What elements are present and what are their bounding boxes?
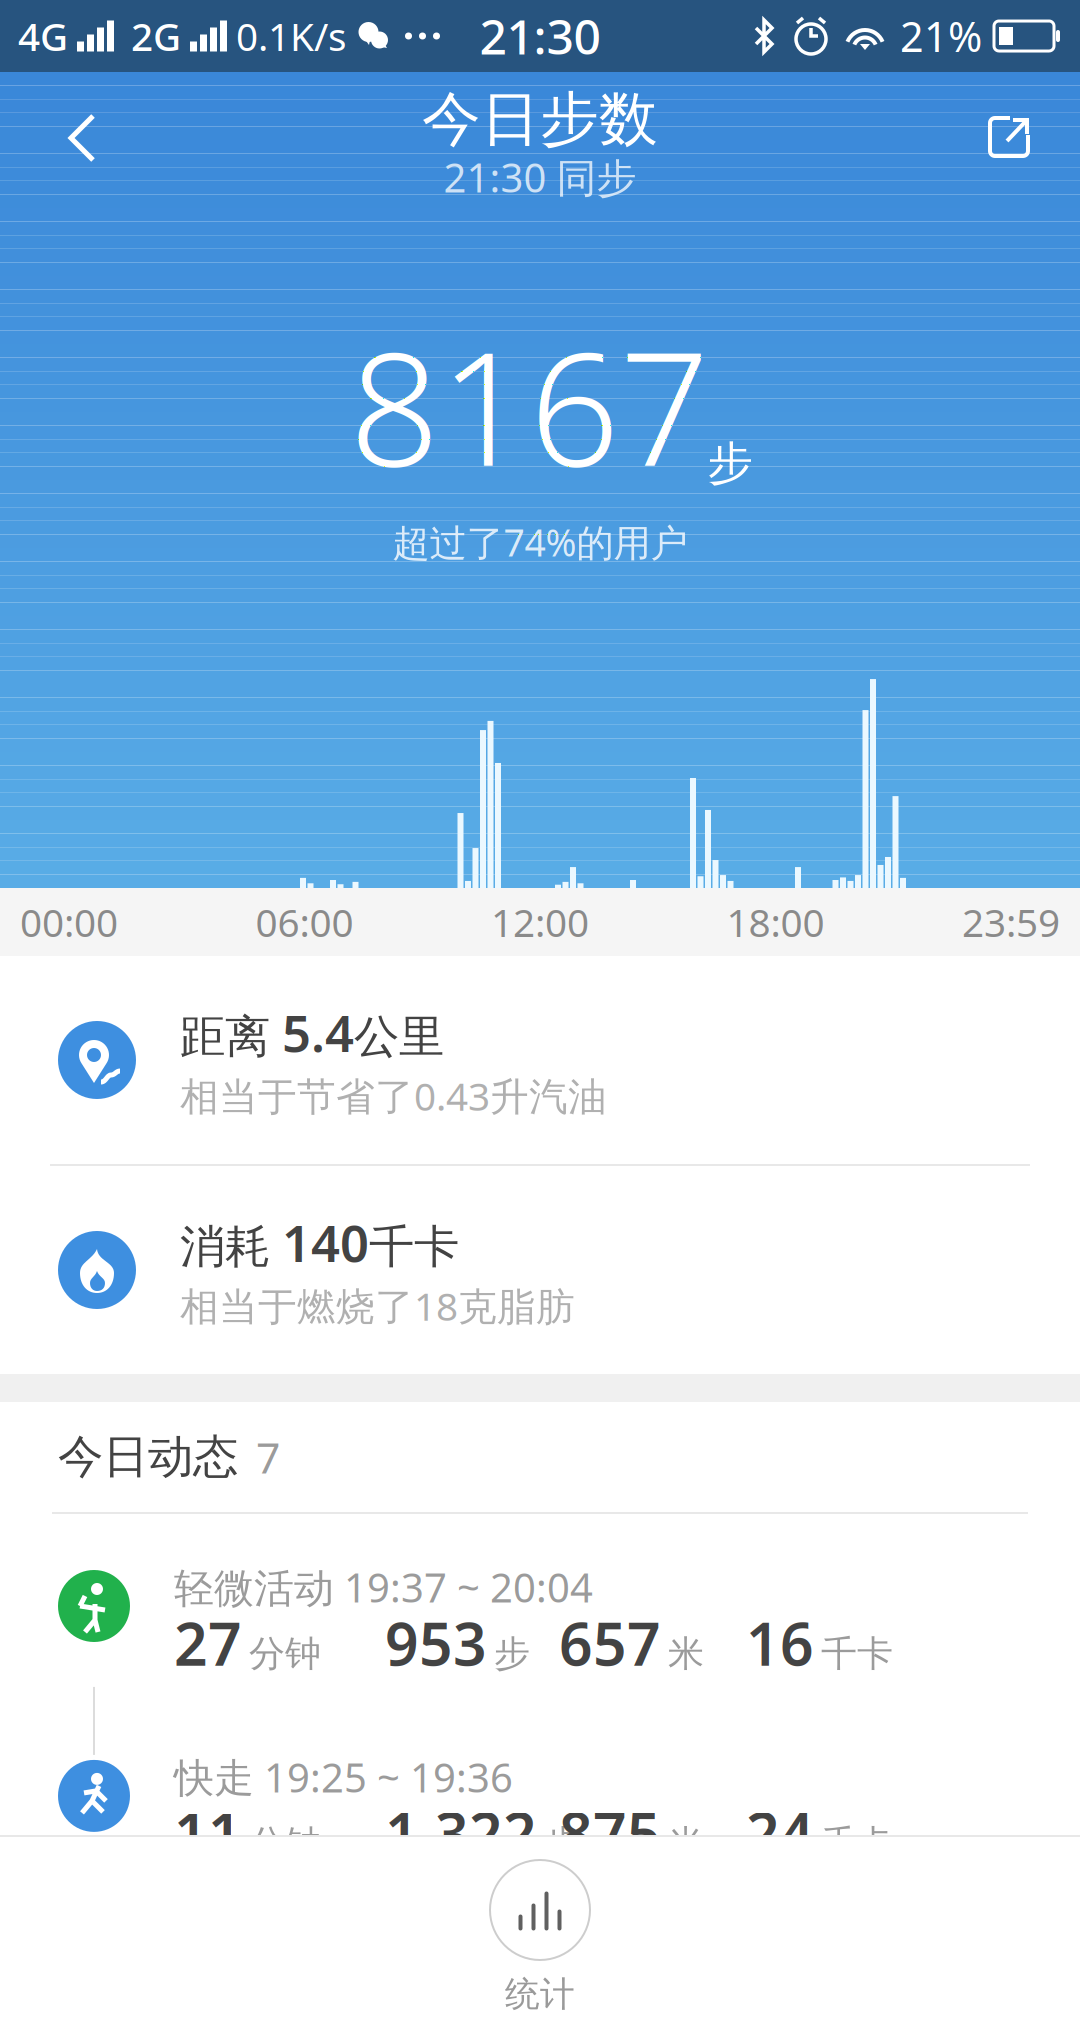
button[interactable]: 距离 xyxy=(0,956,1080,1164)
staticText: 步 xyxy=(494,1632,530,1676)
staticText: 0.1K/s xyxy=(236,10,347,62)
button[interactable]: Share xyxy=(954,81,1064,193)
staticText: 超过了74%的用户 xyxy=(392,517,687,567)
staticText: 分钟 xyxy=(249,1632,321,1676)
staticText: 1,322 xyxy=(385,1794,537,1872)
staticText: 距离 xyxy=(180,1009,270,1065)
staticText: 4G xyxy=(18,10,68,62)
staticText: 相当于燃烧了18克脂肪 xyxy=(180,1280,575,1331)
staticText: 06:00 xyxy=(255,896,353,948)
staticText: 千卡 xyxy=(821,1821,893,1866)
staticText: 23:59 xyxy=(962,896,1060,948)
staticText: 米 xyxy=(668,1632,704,1676)
staticText: 21:30 xyxy=(479,4,600,68)
staticText: 轻微活动 19:37 ~ 20:04 xyxy=(174,1560,593,1613)
staticText: 140 xyxy=(282,1209,369,1276)
staticText: 统计 xyxy=(505,1973,575,2016)
staticText: 7 xyxy=(256,1429,280,1485)
staticText: 21:30 同步 xyxy=(443,150,636,204)
staticText: 公里 xyxy=(354,1009,444,1065)
button[interactable]: Back xyxy=(16,81,126,193)
staticText: 00:00 xyxy=(20,896,118,948)
staticText: 16 xyxy=(746,1604,814,1682)
staticText: 18:00 xyxy=(726,896,824,948)
staticText: 相当于节省了0.43升汽油 xyxy=(180,1070,607,1121)
button[interactable]: 消耗 xyxy=(0,1166,1080,1374)
staticText: 657 xyxy=(559,1604,661,1682)
staticText: 5.4 xyxy=(282,999,354,1066)
staticText: 千卡 xyxy=(369,1219,459,1275)
staticText: 12:00 xyxy=(491,896,589,948)
staticText: 953 xyxy=(385,1604,487,1682)
staticText: 875 xyxy=(559,1794,661,1872)
staticText: 2G xyxy=(131,10,181,62)
staticText: 消耗 xyxy=(180,1219,270,1275)
staticText: 今日动态 xyxy=(58,1429,238,1485)
button[interactable]: 统计 xyxy=(0,1835,1080,2034)
staticText: 步 xyxy=(707,435,752,491)
staticText: 8167 xyxy=(349,300,709,509)
staticText: 步 xyxy=(544,1821,580,1866)
staticText: 快走 19:25 ~ 19:36 xyxy=(174,1750,513,1803)
staticText: 今日步数 xyxy=(422,83,658,155)
staticText: 21% xyxy=(900,9,982,63)
staticText: 分钟 xyxy=(249,1821,321,1866)
staticText: 27 xyxy=(174,1604,242,1682)
staticText: 24 xyxy=(746,1794,814,1872)
staticText: 11 xyxy=(174,1794,242,1872)
staticText: 千卡 xyxy=(821,1632,893,1676)
staticText: 米 xyxy=(668,1821,704,1866)
